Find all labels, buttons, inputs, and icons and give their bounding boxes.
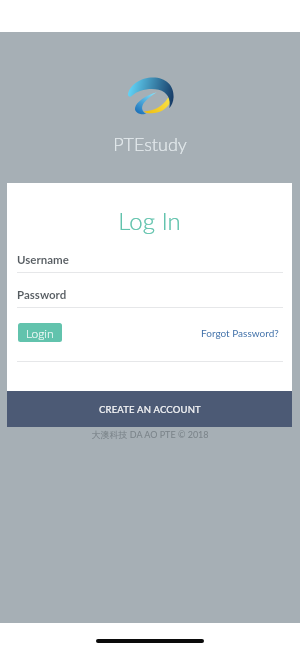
staticText: 大澳科技 DA AO PTE © 2018 [0,429,300,441]
staticText: Forgot Password? [201,327,279,339]
staticText: Login [26,326,54,340]
staticText: Password [17,288,67,302]
button[interactable]: Login [18,323,62,342]
staticText: Log In [7,206,292,235]
staticText: PTEstudy [0,133,300,155]
other: PTEstudy logo [126,75,176,115]
staticText: Username [17,253,69,267]
button[interactable]: Forgot Password? [200,327,279,339]
staticText: CREATE AN ACCOUNT [99,404,201,415]
button[interactable]: CREATE AN ACCOUNT [7,391,292,427]
